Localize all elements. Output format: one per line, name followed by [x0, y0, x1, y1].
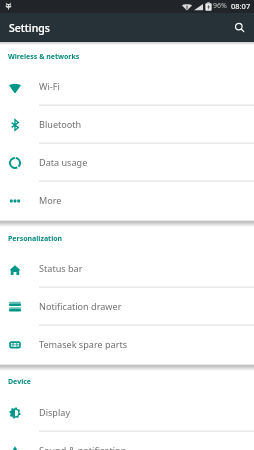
button[interactable]: Notification drawer: [0, 288, 254, 326]
staticText: Status bar: [39, 262, 83, 274]
button[interactable]: Status bar: [0, 251, 254, 288]
staticText: 08:07: [231, 1, 251, 11]
staticText: Wi-Fi: [39, 80, 60, 92]
button[interactable]: Wi-Fi: [0, 69, 254, 106]
staticText: 96%: [213, 1, 227, 11]
button[interactable]: Bluetooth: [0, 106, 254, 144]
button[interactable]: Sound & notification: [0, 432, 254, 450]
button[interactable]: More: [0, 182, 254, 220]
staticText: Display: [39, 406, 71, 418]
staticText: Sound & notification: [39, 444, 127, 450]
staticText: Bluetooth: [39, 118, 82, 130]
staticText: Device: [8, 377, 32, 387]
button[interactable]: Temasek spare parts: [0, 326, 254, 364]
button[interactable]: Display: [0, 394, 254, 432]
staticText: Notification drawer: [39, 300, 122, 312]
staticText: Data usage: [39, 156, 88, 168]
button[interactable]: Search: [225, 13, 254, 42]
staticText: Wireless & networks: [8, 52, 80, 62]
staticText: Personalization: [8, 234, 63, 244]
button[interactable]: Data usage: [0, 144, 254, 182]
staticText: Settings: [9, 21, 50, 35]
staticText: Temasek spare parts: [39, 338, 128, 350]
staticText: More: [39, 194, 62, 206]
